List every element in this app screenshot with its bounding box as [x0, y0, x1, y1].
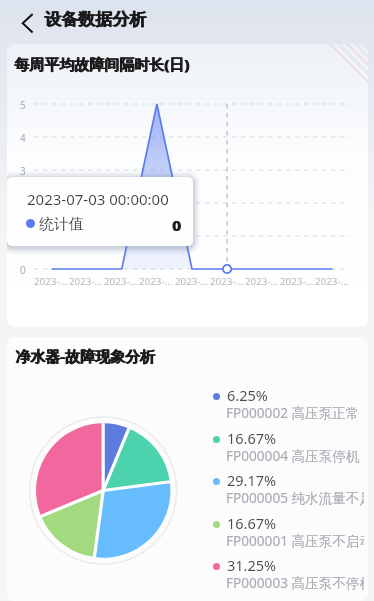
staticText: 0 [173, 215, 182, 235]
staticText: 16.67% [227, 513, 277, 533]
staticText: 设备数据分析 [45, 9, 147, 30]
staticText: 设备数据分析 [44, 9, 146, 30]
staticText: 净水器-故障现象分析 [16, 346, 156, 366]
staticText: 0 [172, 215, 181, 235]
staticText: 2023-... [104, 275, 138, 288]
staticText: FP000003 高压泵不停机 [226, 573, 364, 592]
staticText: 4 [20, 131, 26, 145]
button[interactable] [210, 414, 368, 454]
staticText: 2023-... [69, 275, 103, 288]
staticText: FP000005 纯水流量不足 [226, 488, 364, 507]
button[interactable] [210, 541, 368, 581]
staticText: 2023-... [315, 275, 349, 288]
staticText: FP000004 高压泵停机 [226, 446, 364, 465]
staticText: 6.25% [227, 385, 268, 405]
button[interactable] [210, 456, 368, 496]
staticText: FP000002 高压泵正常 [226, 403, 364, 422]
staticText: 0 [172, 215, 181, 235]
button[interactable]: Back [14, 7, 44, 37]
staticText: 2023-... [210, 275, 244, 288]
staticText: 每周平均故障间隔时长(日) [14, 54, 190, 74]
staticText: 31.25% [227, 555, 277, 575]
staticText: 5 [20, 98, 26, 112]
staticText: 0 [20, 263, 26, 277]
staticText: 每周平均故障间隔时长(日) [15, 54, 191, 74]
staticText: FP000001 高压泵不启动 [226, 531, 364, 550]
staticText: 净水器-故障现象分析 [15, 346, 155, 366]
staticText: 29.17% [227, 470, 277, 490]
staticText: 2023-... [139, 275, 173, 288]
staticText: 3 [20, 164, 26, 178]
button[interactable] [210, 371, 368, 411]
staticText: 2023-... [245, 275, 279, 288]
staticText: 2023-... [280, 275, 314, 288]
staticText: 净水器-故障现象分析 [15, 346, 155, 366]
staticText: 2023-07-03 00:00:00 [27, 189, 169, 209]
button[interactable] [210, 499, 368, 539]
staticText: 2023-... [175, 275, 209, 288]
staticText: 每周平均故障间隔时长(日) [14, 54, 190, 74]
staticText: 设备数据分析 [44, 9, 146, 30]
staticText: 2023-... [34, 275, 68, 288]
staticText: 统计值 [39, 215, 84, 234]
staticText: 16.67% [227, 428, 277, 448]
